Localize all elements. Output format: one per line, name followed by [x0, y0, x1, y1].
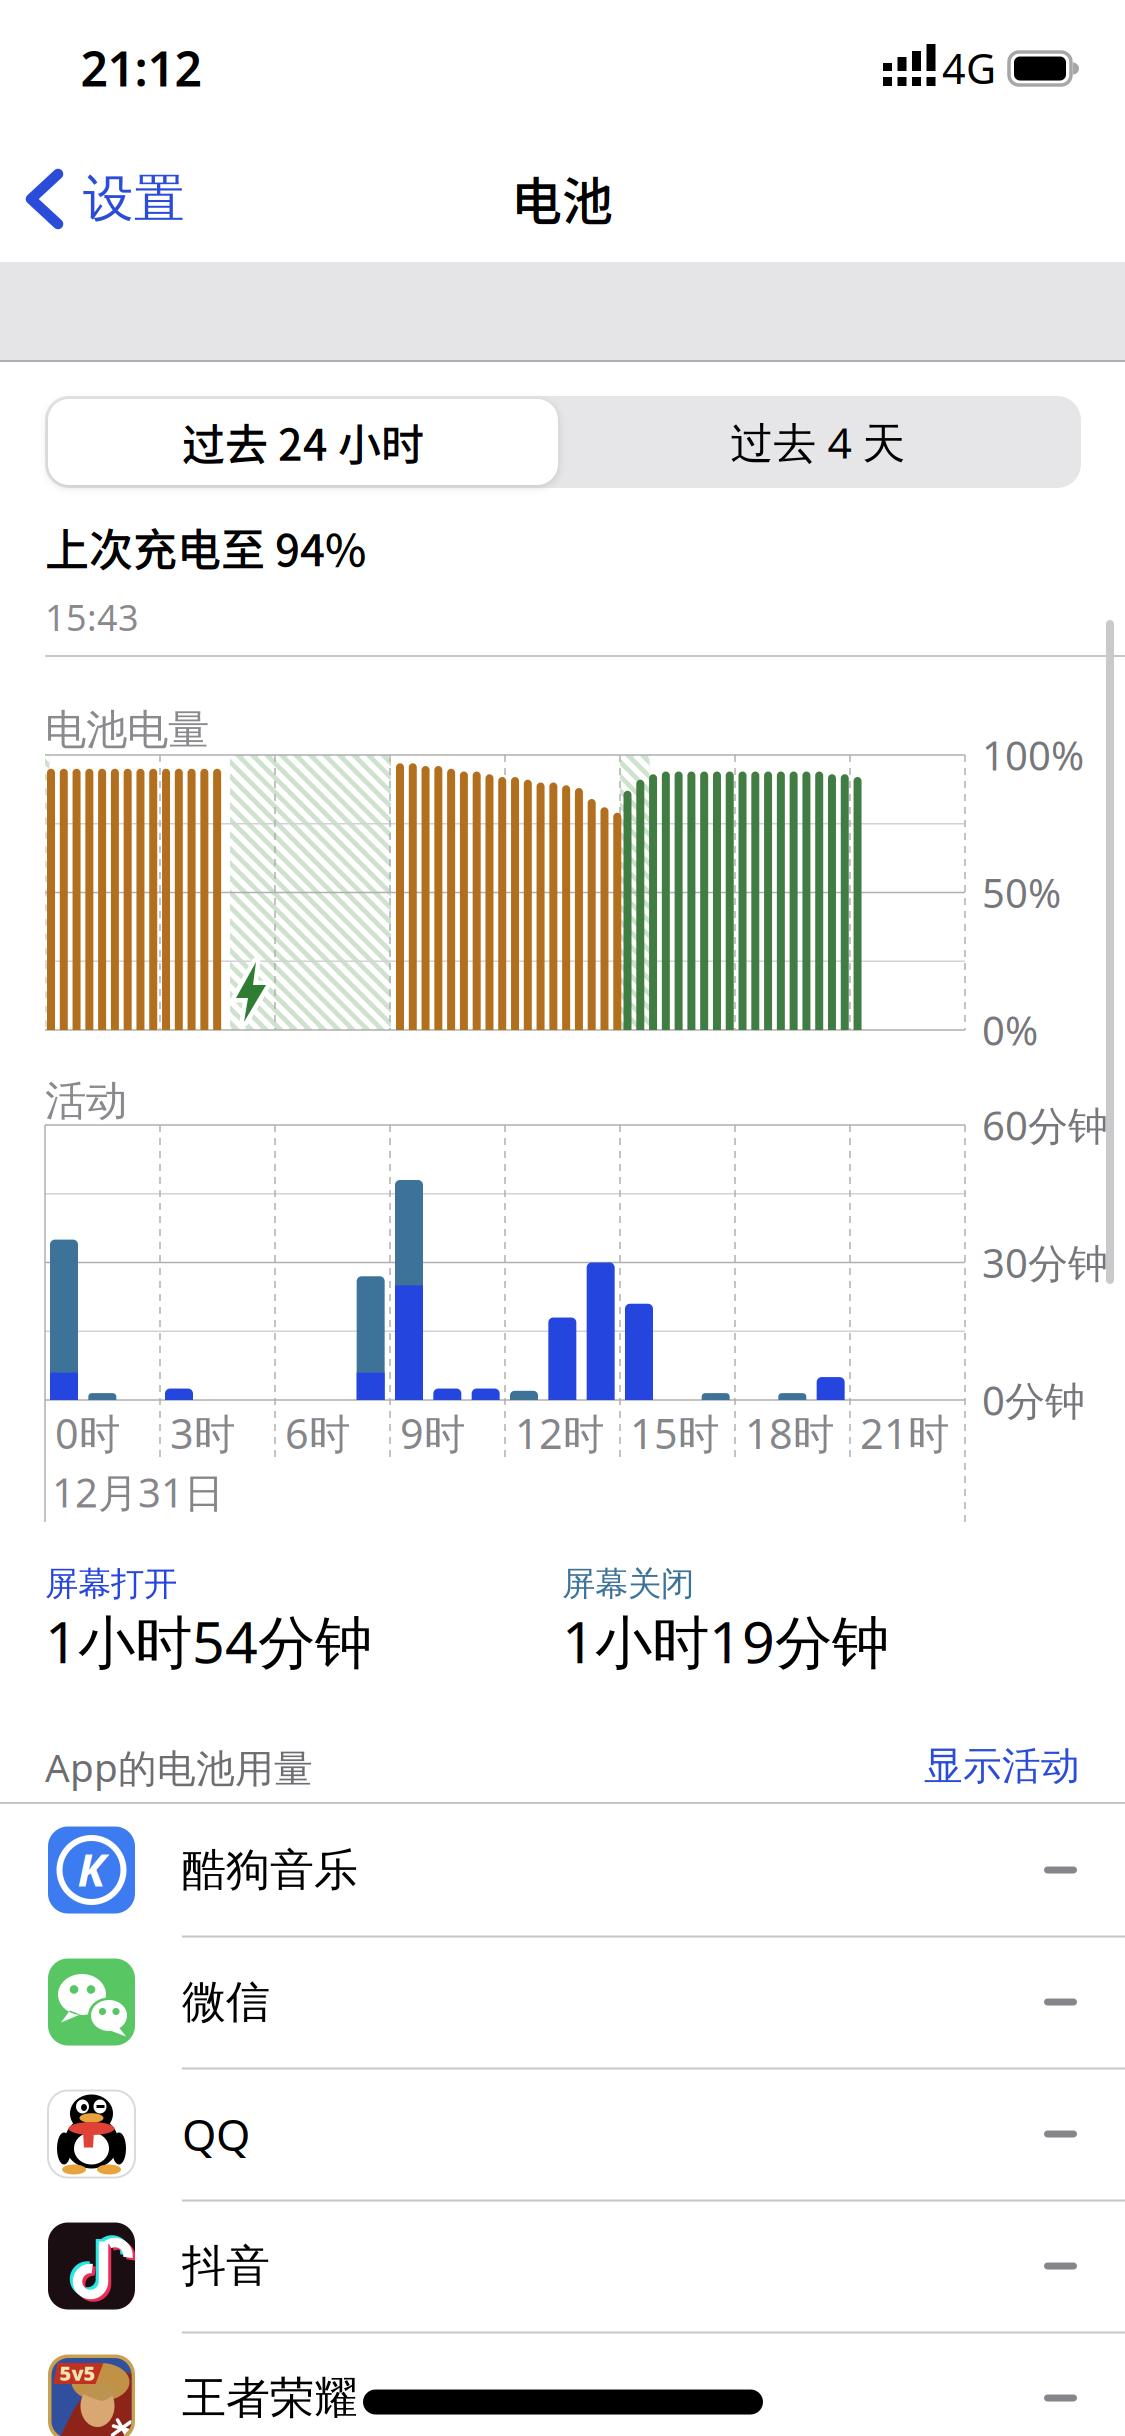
staticText: 设置 — [83, 168, 185, 230]
staticText: 活动 — [45, 1076, 127, 1126]
button[interactable]: K — [0, 1804, 1125, 1936]
staticText: 6时 — [285, 1406, 350, 1460]
staticText: 上次充电至 94% — [45, 515, 366, 579]
staticText: 21时 — [860, 1406, 949, 1460]
button[interactable]: 5v5 — [0, 2332, 1125, 2436]
staticText: QQ — [182, 2105, 250, 2163]
staticText: 电池电量 — [45, 705, 209, 755]
staticText: 15:43 — [45, 593, 139, 641]
button[interactable]: 过去 4 天 — [558, 399, 1078, 485]
staticText: 12时 — [515, 1406, 604, 1460]
button[interactable]: 设置 — [0, 0, 230, 100]
button[interactable]: 抖音 — [0, 2200, 1125, 2332]
staticText: 王者荣耀 — [182, 2371, 358, 2425]
button[interactable]: QQ — [0, 2068, 1125, 2200]
staticText: App的电池用量 — [45, 1741, 313, 1793]
staticText: 4G — [942, 41, 996, 95]
staticText: 过去 24 小时 — [182, 411, 424, 473]
staticText: 0% — [982, 1003, 1038, 1056]
staticText: 1小时19分钟 — [562, 1603, 889, 1679]
button[interactable]: 显示活动 — [0, 0, 1125, 2436]
staticText: 9时 — [400, 1406, 465, 1460]
button[interactable]: 过去 24 小时 — [48, 399, 558, 485]
staticText: 微信 — [182, 1975, 270, 2029]
staticText: 屏幕打开 — [45, 1563, 177, 1604]
staticText: 21:12 — [80, 36, 201, 100]
staticText: 酷狗音乐 — [182, 1843, 358, 1897]
staticText: 5v5 — [59, 2360, 95, 2386]
staticText: 30分钟 — [982, 1236, 1108, 1289]
staticText: 18时 — [745, 1406, 834, 1460]
staticText: 电池 — [511, 161, 613, 235]
staticText: 过去 4 天 — [730, 414, 905, 470]
staticText: 0分钟 — [982, 1373, 1085, 1426]
staticText: 3时 — [170, 1406, 235, 1460]
button[interactable]: 微信 — [0, 1936, 1125, 2068]
staticText: K — [77, 1839, 105, 1899]
staticText: 抖音 — [182, 2239, 270, 2293]
staticText: 100% — [982, 728, 1084, 781]
staticText: 1小时54分钟 — [45, 1603, 372, 1679]
staticText: 12月31日 — [52, 1465, 224, 1518]
staticText: 15时 — [630, 1406, 719, 1460]
staticText: 屏幕关闭 — [562, 1563, 694, 1604]
staticText: 60分钟 — [982, 1098, 1108, 1151]
staticText: 0时 — [55, 1406, 120, 1460]
staticText: 显示活动 — [924, 1742, 1080, 1790]
staticText: 50% — [982, 866, 1061, 919]
